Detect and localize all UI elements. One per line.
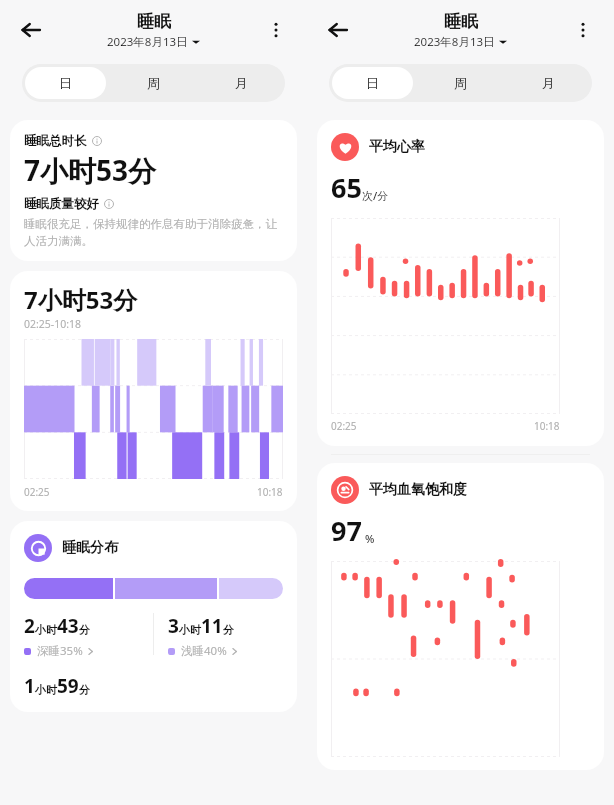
button[interactable]: 周	[419, 67, 501, 99]
button[interactable]: 日	[25, 67, 106, 99]
staticText: 睡眠	[444, 11, 478, 32]
staticText: 3	[168, 613, 179, 639]
staticText: 7小时53分	[24, 283, 138, 316]
staticText: 分	[79, 623, 90, 637]
button[interactable]: 日	[332, 67, 413, 99]
button[interactable]: 3	[168, 613, 283, 659]
staticText: 小时	[179, 623, 201, 637]
staticText: 深睡35%	[37, 643, 83, 659]
button[interactable]: Back	[319, 11, 357, 49]
staticText: 分	[223, 623, 234, 637]
staticText: 02:25-10:18	[24, 317, 82, 331]
staticText: 平均心率	[369, 138, 425, 156]
button[interactable]: 平均血氧饱和度	[317, 463, 604, 770]
staticText: 睡眠分布	[62, 539, 118, 557]
staticText: 分	[79, 683, 90, 697]
button[interactable]: 月	[200, 67, 282, 99]
button[interactable]: 睡眠总时长	[10, 120, 297, 261]
staticText: 睡眠很充足，保持规律的作息有助于消除疲惫，让人活力满满。	[24, 217, 283, 248]
button[interactable]: 2023年8月13日	[414, 34, 507, 50]
button[interactable]: 2023年8月13日	[107, 34, 200, 50]
staticText: 97	[331, 512, 362, 549]
button[interactable]: 平均心率	[317, 120, 604, 446]
staticText: 睡眠	[137, 11, 171, 32]
button[interactable]: 睡眠分布	[10, 521, 297, 712]
staticText: 65	[331, 169, 362, 206]
button[interactable]: 7小时53分	[10, 271, 297, 511]
staticText: 59	[57, 673, 79, 699]
staticText: 2023年8月13日	[414, 34, 495, 50]
button[interactable]: Back	[12, 11, 50, 49]
button[interactable]: 2	[24, 613, 153, 659]
staticText: 1	[24, 673, 35, 699]
button[interactable]: 1	[24, 673, 153, 699]
staticText: 10:18	[534, 419, 560, 433]
staticText: 日	[366, 75, 379, 91]
staticText: 平均血氧饱和度	[369, 481, 467, 499]
staticText: 睡眠总时长	[24, 133, 87, 149]
staticText: 02:25	[331, 419, 357, 433]
staticText: 日	[59, 75, 72, 91]
staticText: 2023年8月13日	[107, 34, 188, 50]
staticText: 睡眠质量较好	[24, 196, 99, 212]
staticText: 43	[57, 613, 79, 639]
staticText: 周	[147, 75, 160, 91]
staticText: 小时	[35, 623, 57, 637]
staticText: 7小时53分	[24, 151, 157, 189]
staticText: 次/分	[362, 188, 389, 203]
staticText: %	[365, 531, 375, 546]
staticText: 月	[235, 75, 248, 91]
staticText: 11	[201, 613, 223, 639]
staticText: 小时	[35, 683, 57, 697]
staticText: 10:18	[257, 485, 283, 499]
staticText: 月	[542, 75, 555, 91]
button[interactable]: 周	[112, 67, 194, 99]
staticText: 02:25	[24, 485, 50, 499]
staticText: 2	[24, 613, 35, 639]
button[interactable]: 月	[507, 67, 589, 99]
staticText: 周	[454, 75, 467, 91]
button[interactable]: More options	[259, 13, 293, 47]
staticText: 浅睡40%	[181, 643, 227, 659]
button[interactable]: More options	[566, 13, 600, 47]
